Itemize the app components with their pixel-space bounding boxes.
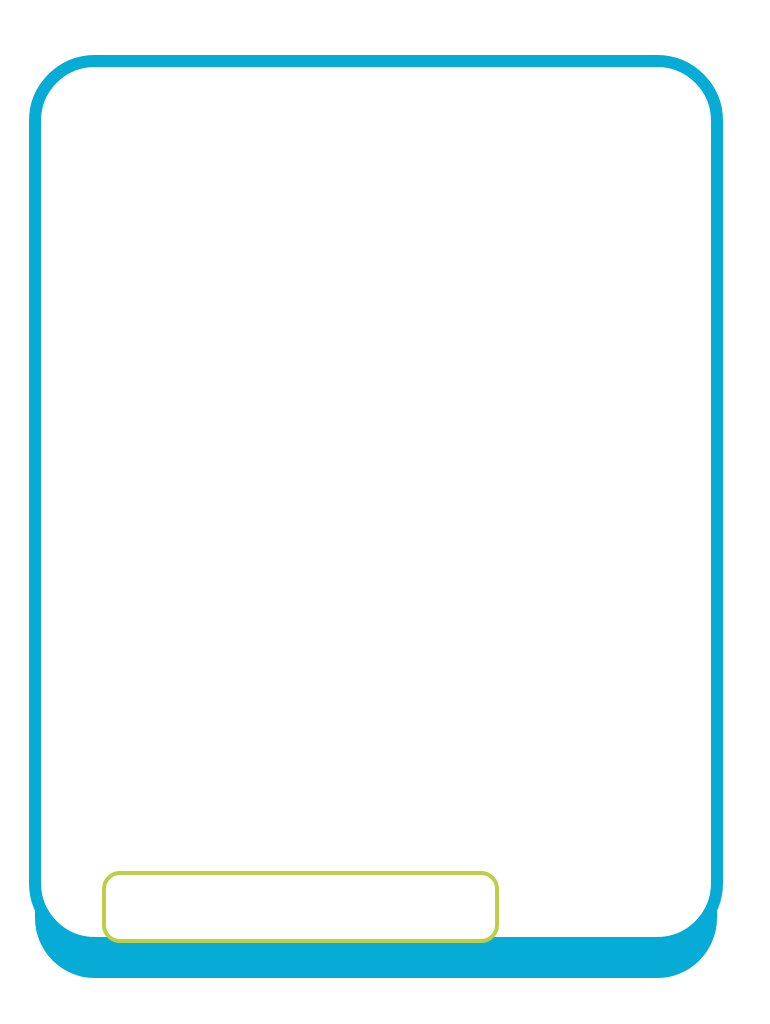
- button[interactable]: Card: [0, 0, 770, 1024]
- button[interactable]: Input field: [0, 0, 770, 1024]
